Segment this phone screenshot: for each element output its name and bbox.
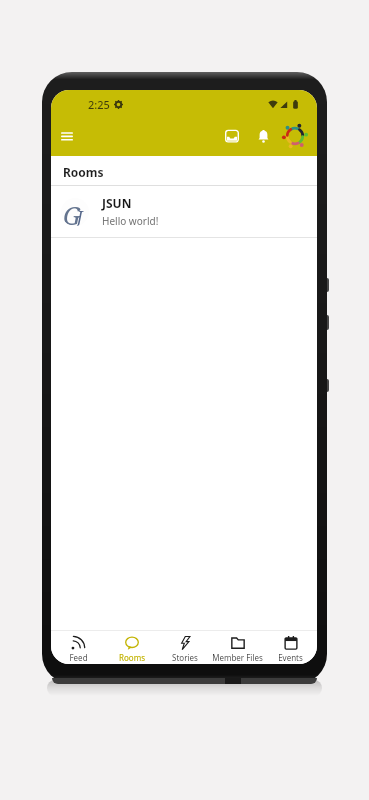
staticText: Rooms bbox=[119, 652, 145, 663]
staticText: Events bbox=[278, 652, 303, 663]
button[interactable]: Events bbox=[264, 631, 317, 664]
button[interactable]: Feed bbox=[51, 631, 105, 664]
staticText: Feed bbox=[69, 652, 88, 663]
button[interactable] bbox=[282, 123, 308, 149]
button[interactable]: Rooms bbox=[105, 631, 158, 664]
button[interactable] bbox=[252, 125, 274, 147]
staticText: J bbox=[77, 206, 83, 226]
staticText: JSUN bbox=[102, 195, 132, 211]
staticText: Hello world! bbox=[102, 214, 159, 228]
staticText: Stories bbox=[172, 652, 198, 663]
button[interactable]: Stories bbox=[158, 631, 211, 664]
button[interactable] bbox=[221, 125, 243, 147]
button[interactable] bbox=[55, 124, 79, 148]
button[interactable]: Member Files bbox=[211, 631, 264, 664]
staticText: G bbox=[63, 198, 81, 226]
staticText: 2:25 bbox=[88, 97, 110, 112]
staticText: Member Files bbox=[212, 652, 263, 663]
button[interactable]: G bbox=[51, 186, 317, 237]
staticText: Rooms bbox=[63, 164, 104, 180]
